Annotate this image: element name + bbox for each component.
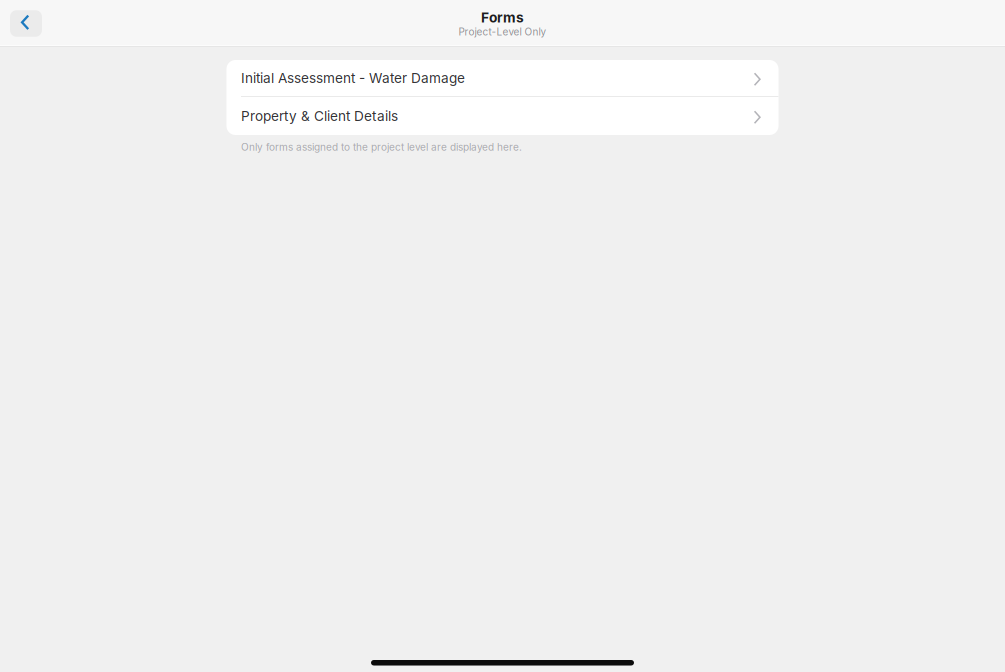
staticText: Only forms assigned to the project level… (241, 141, 522, 153)
button[interactable]: Property & Client Details (226, 97, 778, 135)
button[interactable]: Initial Assessment - Water Damage (226, 60, 778, 96)
button[interactable]: Back (10, 10, 42, 37)
staticText: Forms (481, 9, 524, 26)
staticText: Project-Level Only (458, 26, 546, 38)
staticText: Property & Client Details (241, 108, 398, 124)
staticText: Initial Assessment - Water Damage (241, 70, 465, 86)
